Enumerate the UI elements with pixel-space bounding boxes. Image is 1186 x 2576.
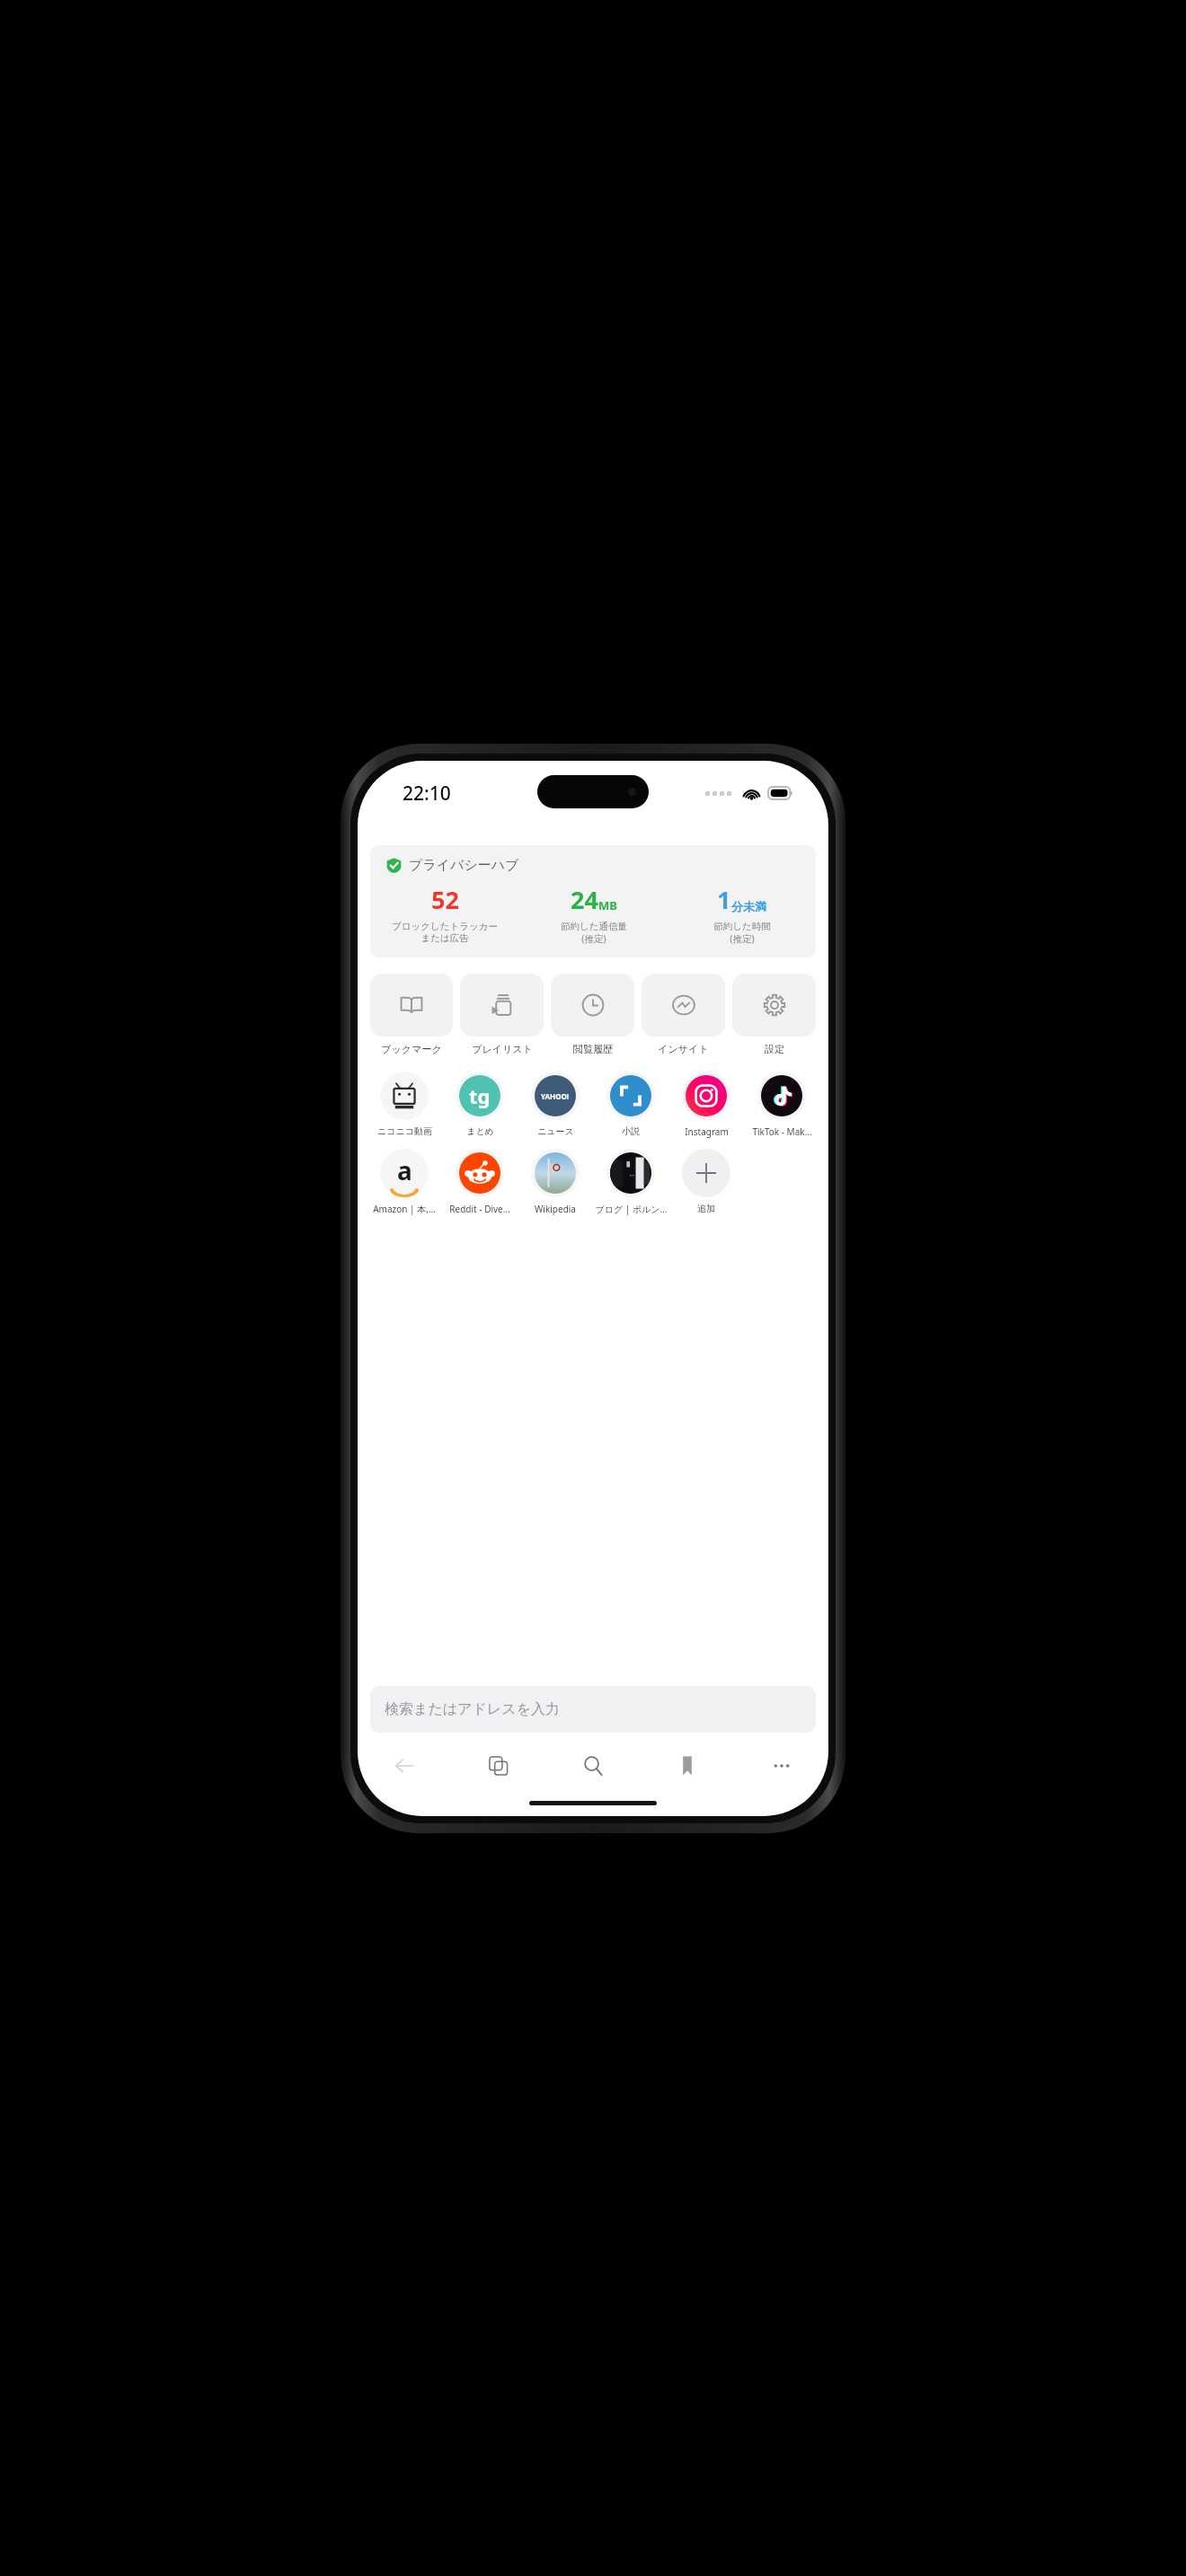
button[interactable]: 小説: [593, 1072, 668, 1137]
staticText: 閲覧履歴: [573, 1043, 613, 1055]
staticText: または広告: [420, 932, 469, 944]
staticText: 節約した時間: [713, 921, 771, 932]
staticText: MB: [598, 897, 617, 913]
staticText: ブックマーク: [381, 1043, 442, 1055]
staticText: プライバシーハブ: [409, 857, 519, 874]
staticText: (推定): [581, 932, 606, 945]
button[interactable]: Bookmarks: [640, 1742, 734, 1790]
staticText: ニコニコ動画: [377, 1125, 432, 1137]
staticText: 小説: [622, 1125, 640, 1137]
button[interactable]: Reddit - Dive…: [442, 1149, 518, 1215]
staticText: 検索またはアドレスを入力: [385, 1700, 560, 1718]
staticText: ニュース: [537, 1125, 574, 1137]
staticText: 追加: [697, 1203, 715, 1214]
staticText: Instagram: [685, 1125, 729, 1138]
staticText: まとめ: [466, 1125, 494, 1137]
button[interactable]: 追加: [668, 1149, 744, 1214]
button[interactable]: Back: [358, 1742, 451, 1790]
button[interactable]: YAHOO!: [518, 1072, 593, 1137]
staticText: Amazon | 本,…: [373, 1203, 436, 1215]
staticText: プレイリスト: [472, 1043, 533, 1055]
button[interactable]: Instagram: [668, 1072, 744, 1138]
button[interactable]: Tabs: [451, 1742, 545, 1790]
button[interactable]: プライバシーハブ: [370, 845, 816, 957]
button[interactable]: 検索またはアドレスを入力: [370, 1686, 816, 1733]
button[interactable]: ブログ | ポルン…: [593, 1149, 668, 1215]
button[interactable]: More: [734, 1742, 828, 1790]
staticText: YAHOO!: [541, 1091, 570, 1101]
staticText: TikTok - Mak…: [752, 1125, 812, 1138]
button[interactable]: TikTok - Mak…: [744, 1072, 819, 1138]
staticText: インサイト: [658, 1043, 709, 1055]
staticText: 24: [571, 883, 598, 916]
staticText: 22:10: [403, 781, 451, 807]
staticText: ブロックしたトラッカー: [392, 921, 498, 932]
button[interactable]: Playlist: [460, 974, 544, 1055]
button[interactable]: Bookmarks: [370, 974, 453, 1055]
staticText: 分未満: [731, 899, 766, 913]
staticText: 節約した通信量: [561, 921, 627, 932]
button[interactable]: History: [551, 974, 634, 1055]
staticText: tg: [469, 1082, 491, 1109]
staticText: a: [397, 1153, 412, 1187]
staticText: 52: [431, 883, 459, 916]
button[interactable]: ニコニコ動画: [367, 1072, 442, 1137]
button[interactable]: Insights: [642, 974, 725, 1055]
staticText: (推定): [730, 932, 755, 945]
staticText: Reddit - Dive…: [449, 1203, 510, 1215]
staticText: Wikipedia: [535, 1203, 576, 1215]
staticText: 1: [717, 883, 731, 916]
button[interactable]: Wikipedia: [518, 1149, 593, 1215]
staticText: 設定: [765, 1043, 784, 1055]
button[interactable]: tg: [442, 1072, 518, 1137]
button[interactable]: Search: [545, 1742, 640, 1790]
button[interactable]: Settings: [732, 974, 816, 1055]
button[interactable]: a: [367, 1149, 442, 1215]
staticText: ブログ | ポルン…: [595, 1203, 668, 1215]
